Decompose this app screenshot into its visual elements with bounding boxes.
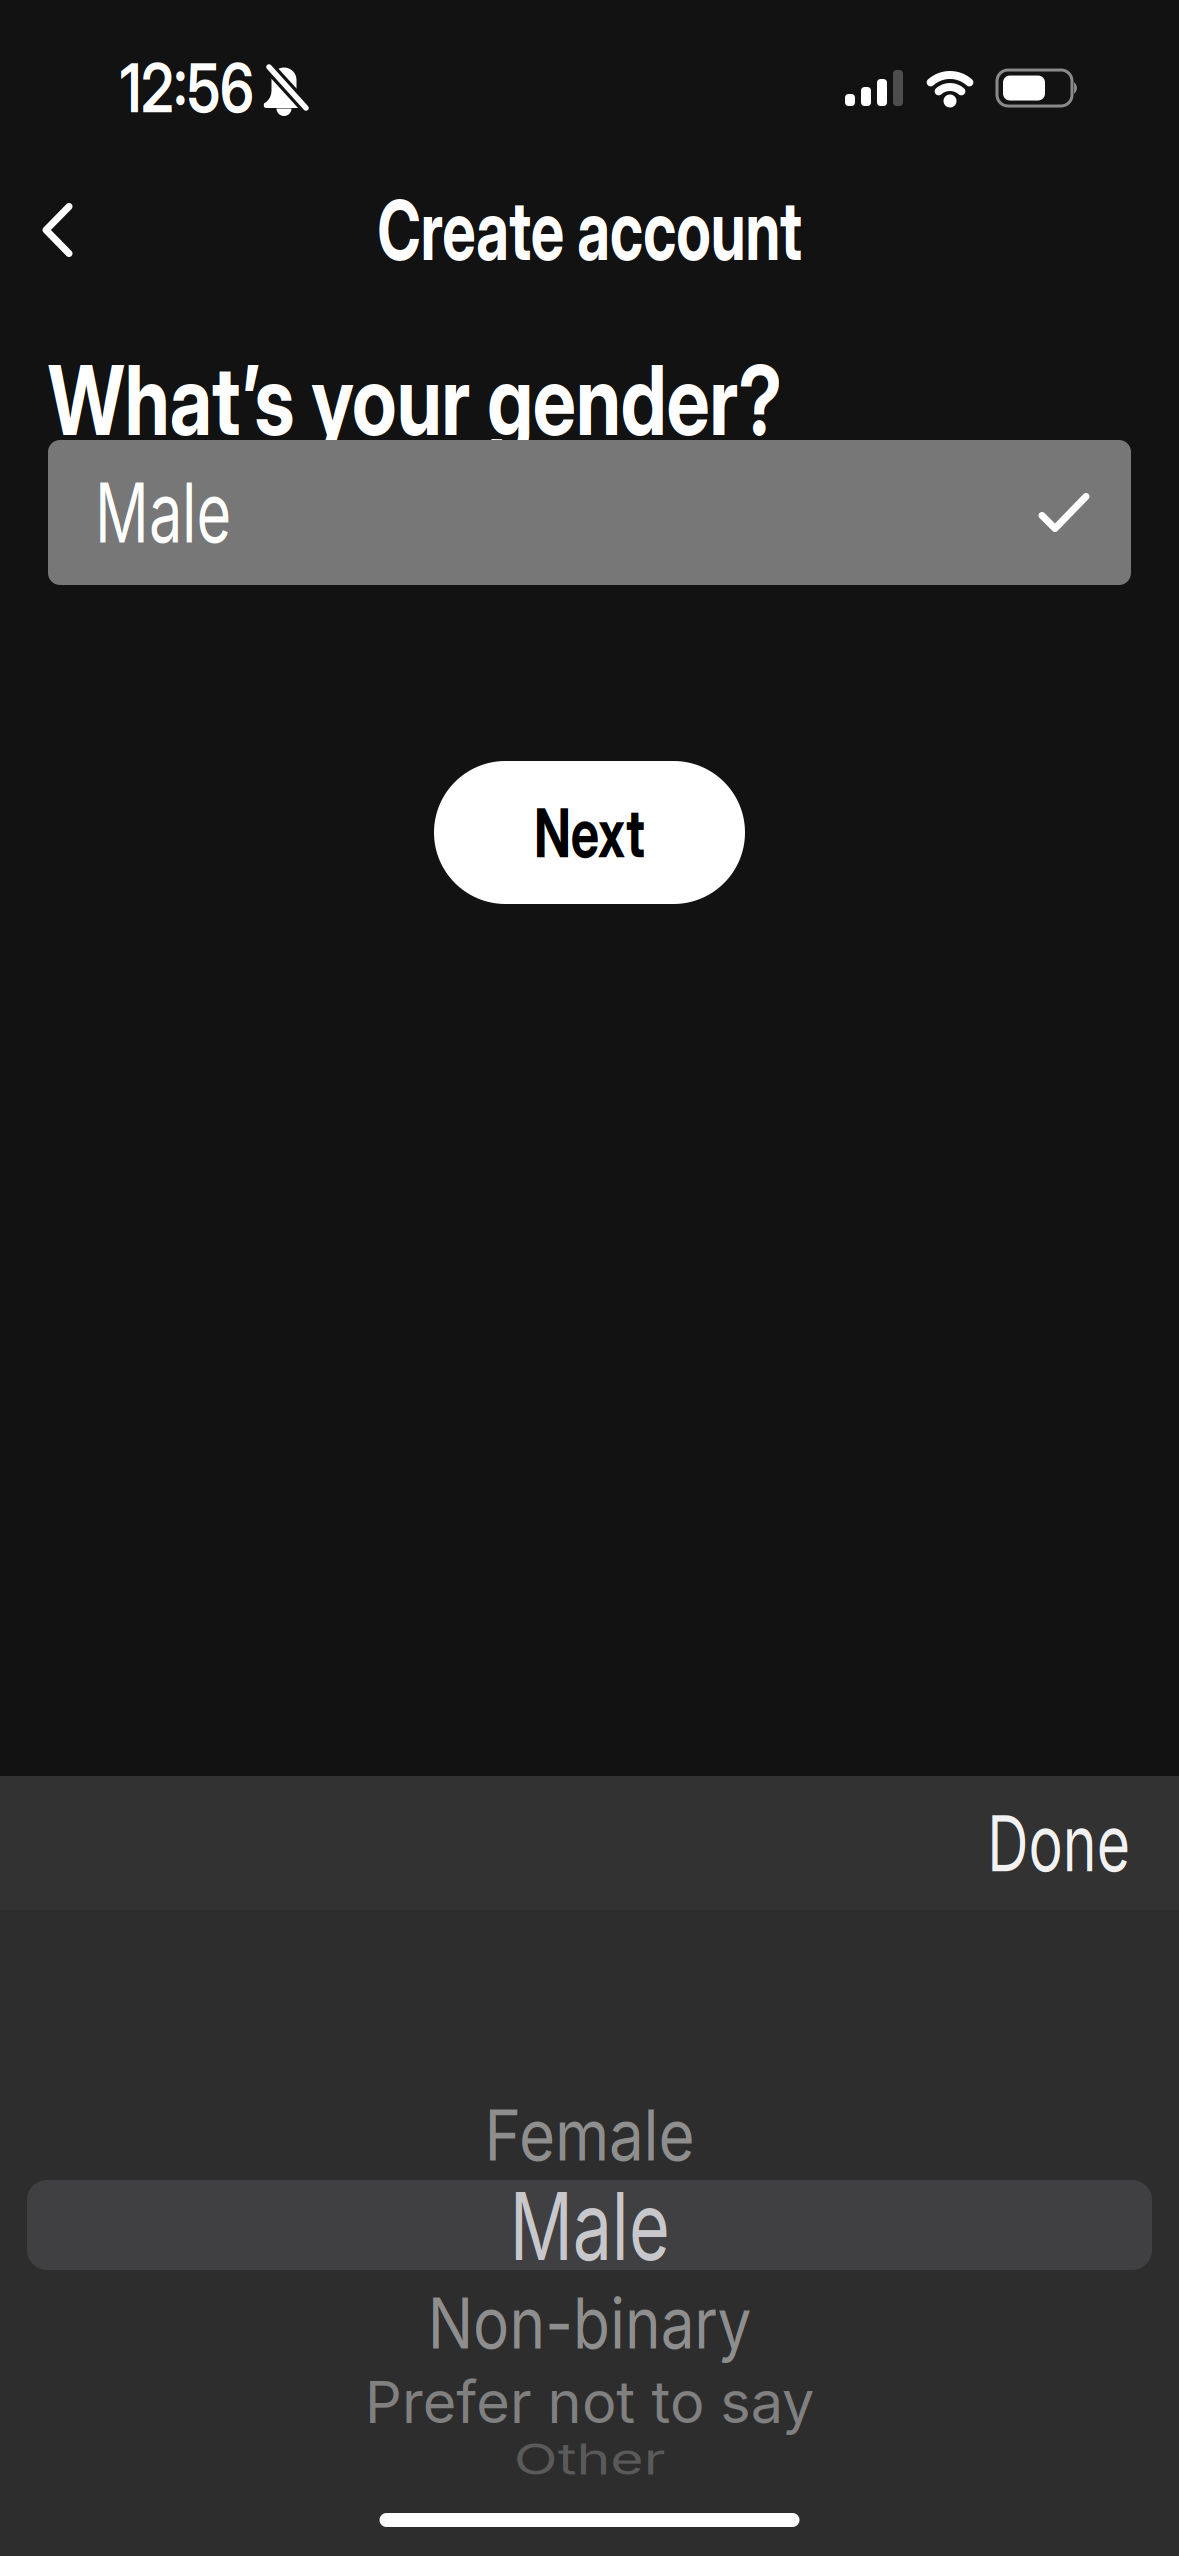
button[interactable]: Back bbox=[0, 182, 105, 277]
button[interactable]: Done bbox=[937, 1796, 1179, 1890]
staticText: 12:56 bbox=[120, 48, 279, 128]
staticText: Non-binary bbox=[368, 2273, 811, 2373]
staticText: Create account bbox=[295, 180, 884, 280]
staticText: Male bbox=[95, 462, 284, 562]
staticText: Female bbox=[449, 2085, 729, 2185]
staticText: What’s your gender? bbox=[48, 342, 965, 458]
staticText: Male bbox=[483, 2169, 696, 2282]
staticText: Other bbox=[501, 2419, 677, 2499]
button[interactable]: Next bbox=[434, 761, 745, 904]
staticText: Next bbox=[515, 791, 664, 874]
staticText: Prefer not to say bbox=[309, 2358, 870, 2445]
staticText: Done bbox=[937, 1796, 1130, 1890]
button[interactable]: Male bbox=[0, 440, 1179, 585]
